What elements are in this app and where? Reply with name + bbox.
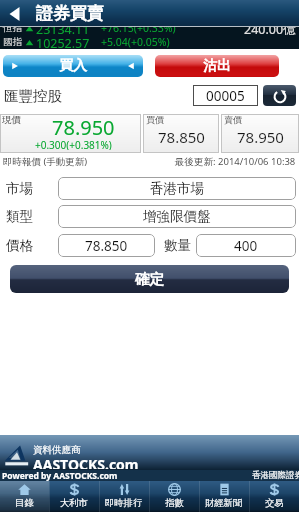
button[interactable]: Refresh: [263, 85, 296, 106]
staticText: 400: [234, 237, 258, 255]
button[interactable]: Back: [3, 2, 27, 26]
staticText: 市場: [6, 180, 33, 197]
staticText: 數量: [164, 237, 191, 254]
staticText: 現價: [2, 114, 21, 126]
button[interactable]: 資料供應商: [0, 435, 299, 470]
staticText: 類型: [6, 208, 33, 225]
staticText: AASTOCKS.com: [33, 455, 139, 469]
staticText: 證券買賣: [36, 3, 104, 24]
button[interactable]: 目錄: [0, 481, 49, 512]
staticText: 78.950: [237, 127, 284, 147]
staticText: 78.950: [52, 114, 115, 141]
button[interactable]: 交易: [249, 481, 299, 512]
staticText: 資料供應商: [33, 444, 81, 456]
staticText: 23134.11: [36, 21, 90, 35]
staticText: 確定: [135, 270, 164, 288]
button[interactable]: 大利市: [49, 481, 99, 512]
staticText: 目錄: [15, 497, 34, 509]
staticText: 恒指: [3, 22, 22, 34]
staticText: +0.300(+0.381%): [35, 138, 112, 150]
button[interactable]: 買入: [3, 55, 143, 77]
staticText: 78.850: [85, 237, 128, 255]
staticText: 指數: [165, 497, 184, 509]
button[interactable]: 78.850: [58, 234, 155, 257]
staticText: 即時排行: [105, 497, 143, 509]
staticText: 財經新聞: [205, 497, 243, 509]
staticText: 買價: [146, 114, 164, 125]
staticText: 賣價: [224, 114, 242, 125]
staticText: 大利市: [60, 497, 88, 509]
button[interactable]: 確定: [10, 265, 289, 293]
staticText: 沽出: [203, 57, 231, 75]
button[interactable]: 沽出: [155, 55, 279, 77]
button[interactable]: 400: [196, 234, 296, 257]
staticText: 78.850: [158, 127, 205, 147]
button[interactable]: 財經新聞: [199, 481, 249, 512]
button[interactable]: 即時排行: [99, 481, 149, 512]
staticText: 價格: [6, 237, 33, 254]
staticText: 買入: [59, 57, 87, 75]
staticText: Powered by AASTOCKS.com: [2, 470, 118, 481]
staticText: +5.04(+0.05%): [101, 35, 170, 49]
staticText: 增強限價盤: [143, 208, 211, 225]
staticText: 交易: [265, 497, 284, 509]
staticText: 匯豐控股: [4, 87, 62, 105]
staticText: 香港國際證券: [252, 470, 299, 481]
staticText: 00005: [206, 87, 245, 105]
staticText: 即時報價 (手動更新): [3, 155, 88, 168]
staticText: 240.00億: [244, 21, 296, 35]
staticText: 10252.57: [36, 35, 90, 49]
button[interactable]: 指數: [149, 481, 199, 512]
staticText: 最後更新: 2014/10/06 10:38: [175, 155, 296, 168]
button[interactable]: 00005: [193, 85, 258, 106]
staticText: 香港市場: [150, 180, 204, 197]
staticText: 國指: [3, 36, 22, 48]
button[interactable]: 香港市場: [58, 177, 296, 200]
button[interactable]: 增強限價盤: [58, 205, 296, 228]
staticText: +76.15(+0.33%): [101, 21, 176, 35]
